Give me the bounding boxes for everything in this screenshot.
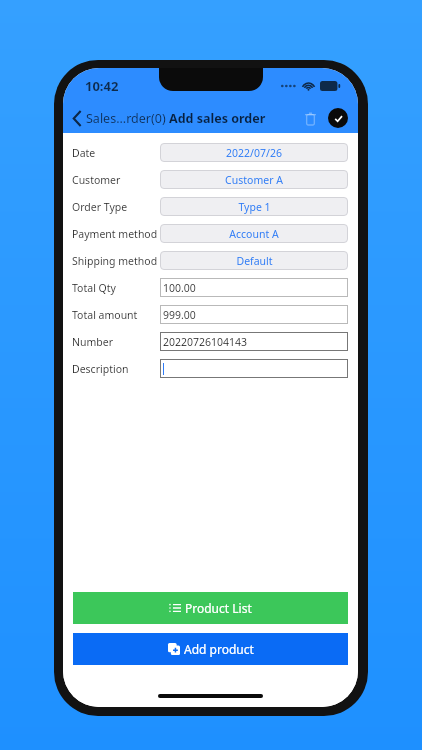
button[interactable]: Payment method — [63, 220, 358, 247]
staticText: Shipping method — [72, 254, 160, 268]
staticText: Default — [236, 254, 273, 268]
button[interactable]: Number — [63, 328, 358, 355]
button[interactable]: Delete — [298, 106, 322, 130]
button[interactable]: Total amount — [63, 301, 358, 328]
button[interactable]: Date — [63, 139, 358, 166]
staticText: Description — [72, 362, 160, 376]
staticText: Date — [72, 146, 160, 160]
button[interactable]: Add product — [73, 633, 348, 665]
button[interactable]: Total Qty — [63, 274, 358, 301]
button[interactable]: Shipping method — [63, 247, 358, 274]
staticText: 100.00 — [163, 281, 196, 295]
button[interactable]: Order Type — [63, 193, 358, 220]
staticText: Add sales order — [169, 110, 266, 127]
staticText: Total amount — [72, 308, 160, 322]
button[interactable]: Product List — [73, 592, 348, 624]
button[interactable]: Confirm — [328, 108, 348, 128]
button[interactable]: Sales...rder(0) — [63, 110, 170, 127]
staticText: Sales...rder(0) — [86, 110, 166, 127]
staticText: Customer A — [225, 173, 283, 187]
staticText: Order Type — [72, 200, 160, 214]
staticText: 999.00 — [163, 308, 196, 322]
staticText: 2022/07/26 — [226, 146, 282, 160]
staticText: Product List — [185, 600, 252, 616]
staticText: Number — [72, 335, 160, 349]
staticText: Customer — [72, 173, 160, 187]
staticText: 10:42 — [85, 77, 119, 95]
button[interactable]: Customer — [63, 166, 358, 193]
button[interactable]: Description — [63, 355, 358, 382]
staticText: Type 1 — [238, 200, 271, 214]
staticText: Payment method — [72, 227, 160, 241]
staticText: Account A — [229, 227, 279, 241]
staticText: 20220726104143 — [163, 335, 248, 349]
staticText: Total Qty — [72, 281, 160, 295]
staticText: Add product — [184, 641, 254, 657]
